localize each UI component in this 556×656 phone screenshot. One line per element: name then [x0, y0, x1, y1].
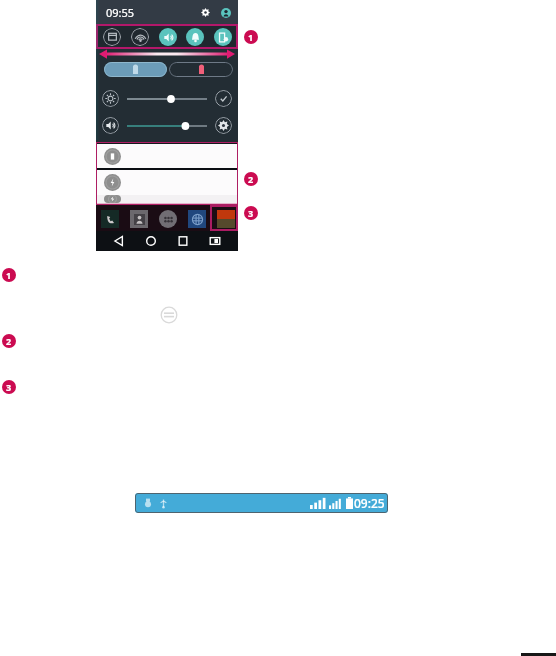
button[interactable]: Home [142, 232, 160, 250]
button[interactable] [97, 195, 237, 203]
staticText: 1 [248, 31, 254, 43]
button[interactable]: User profile [219, 6, 232, 19]
button[interactable]: Callout 2 [244, 172, 258, 186]
button[interactable]: Recents [174, 232, 192, 250]
button[interactable]: Apps [159, 210, 177, 228]
button[interactable]: App [130, 210, 148, 228]
staticText: 09:25 [354, 495, 385, 511]
staticText: 09:55 [106, 5, 135, 20]
staticText: 1 [6, 269, 12, 281]
button[interactable]: App [101, 210, 119, 228]
button[interactable]: Callout 1 [2, 268, 16, 282]
button[interactable]: Callout 2 [2, 334, 16, 348]
staticText: 2 [6, 335, 12, 347]
button[interactable]: Auto brightness [215, 90, 232, 107]
button[interactable]: Callout 1 [244, 30, 258, 44]
button[interactable] [104, 62, 167, 77]
staticText: 3 [6, 381, 12, 393]
button[interactable]: Sound settings [215, 117, 232, 134]
button[interactable]: Quick toggle [103, 28, 121, 46]
button[interactable]: Settings [199, 6, 212, 19]
button[interactable]: Dual window [206, 232, 224, 250]
button[interactable] [97, 170, 237, 195]
staticText: 2 [248, 173, 254, 185]
button[interactable]: Quick toggle [159, 28, 177, 46]
button[interactable]: Callout 3 [244, 206, 258, 220]
button[interactable] [97, 144, 237, 168]
button[interactable]: Quick toggle [214, 28, 232, 46]
button[interactable]: Volume [102, 117, 119, 134]
button[interactable]: App [188, 210, 206, 228]
button[interactable]: Quick toggle [186, 28, 204, 46]
button[interactable]: Callout 3 [2, 380, 16, 394]
button[interactable]: Brightness [102, 90, 119, 107]
button[interactable]: Gallery [217, 210, 235, 228]
button[interactable]: Quick toggle [131, 28, 149, 46]
button[interactable]: Back [110, 232, 128, 250]
staticText: 3 [248, 207, 254, 219]
button[interactable] [169, 62, 233, 77]
